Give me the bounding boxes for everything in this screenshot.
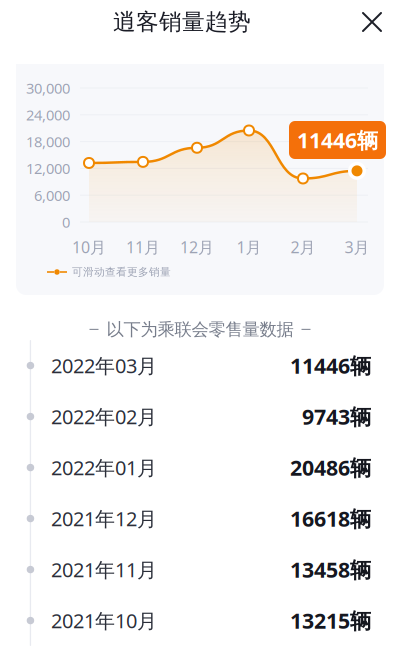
staticText: 20486辆 <box>290 453 371 482</box>
staticText: 1月 <box>236 236 261 258</box>
staticText: 10月 <box>72 236 106 258</box>
staticText: 13215辆 <box>290 606 371 635</box>
button[interactable]: 2021年12月 <box>0 493 400 544</box>
staticText: 11446辆 <box>297 126 378 154</box>
staticText: 11446辆 <box>290 351 371 380</box>
staticText: 0 <box>62 212 70 232</box>
button[interactable]: 2022年03月 <box>0 340 400 391</box>
staticText: 11月 <box>126 236 160 258</box>
staticText: 2021年11月 <box>51 556 157 583</box>
staticText: 2022年03月 <box>51 352 157 379</box>
staticText: 逍客销量趋势 <box>113 8 251 36</box>
staticText: 12月 <box>180 236 214 258</box>
staticText: 13458辆 <box>290 555 371 584</box>
button[interactable]: 2021年11月 <box>0 544 400 595</box>
staticText: 2022年01月 <box>51 454 157 481</box>
staticText: 30,000 <box>26 78 70 98</box>
staticText: 16618辆 <box>290 504 371 533</box>
staticText: 2022年02月 <box>51 403 157 430</box>
button[interactable]: 2022年02月 <box>0 391 400 442</box>
staticText: 24,000 <box>26 105 70 125</box>
button[interactable]: 2021年10月 <box>0 595 400 646</box>
staticText: 18,000 <box>26 132 70 151</box>
staticText: 9743辆 <box>302 402 371 431</box>
staticText: 2021年12月 <box>51 505 157 532</box>
staticText: 3月 <box>344 236 369 258</box>
button[interactable]: 2022年01月 <box>0 442 400 493</box>
staticText: 2021年10月 <box>51 607 157 634</box>
staticText: 6,000 <box>34 185 70 205</box>
staticText: 2月 <box>290 236 315 258</box>
button[interactable]: 关闭 <box>350 0 394 44</box>
staticText: 以下为乘联会零售量数据 <box>106 319 293 340</box>
staticText: 12,000 <box>26 159 70 178</box>
staticText: 可滑动查看更多销量 <box>72 265 171 278</box>
